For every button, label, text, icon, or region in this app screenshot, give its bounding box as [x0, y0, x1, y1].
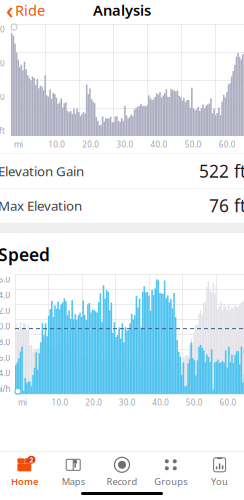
staticText: 60.0: [219, 397, 236, 408]
staticText: 76 ft: [209, 194, 244, 217]
staticText: Groups: [154, 475, 187, 488]
button[interactable]: Max Elevation: [0, 189, 244, 223]
staticText: 60: [0, 24, 5, 35]
staticText: 20: [0, 92, 5, 102]
button[interactable]: Groups: [146, 452, 195, 488]
button[interactable]: You: [195, 452, 244, 488]
staticText: mi: [14, 139, 23, 150]
staticText: 20.0: [85, 397, 102, 408]
staticText: 60.0: [219, 139, 236, 150]
staticText: 30.0: [116, 139, 133, 150]
staticText: Analysis: [93, 0, 151, 20]
staticText: Record: [106, 475, 137, 488]
staticText: 24.0: [0, 290, 10, 300]
staticText: 20.0: [0, 321, 10, 332]
staticText: Elevation Gain: [0, 162, 84, 180]
staticText: mi: [18, 397, 27, 408]
staticText: 10.0: [48, 139, 65, 150]
staticText: 14.0: [0, 368, 10, 378]
staticText: ft: [0, 125, 5, 136]
staticText: 50.0: [186, 397, 203, 408]
button[interactable]: ‹: [0, 0, 45, 25]
staticText: Max Elevation: [0, 197, 82, 214]
staticText: 20.0: [82, 139, 99, 150]
staticText: Maps: [62, 475, 85, 488]
staticText: 30.0: [119, 397, 136, 408]
staticText: 10.0: [52, 397, 69, 408]
staticText: 50.0: [185, 139, 202, 150]
staticText: You: [211, 475, 228, 488]
staticText: 40: [0, 58, 5, 68]
staticText: Home: [11, 475, 38, 488]
staticText: 2: [29, 455, 33, 464]
button[interactable]: Home: [0, 452, 49, 488]
staticText: 40.0: [152, 397, 169, 408]
staticText: Ride: [15, 0, 45, 20]
staticText: 18.0: [0, 337, 10, 347]
button[interactable]: Record: [98, 452, 146, 488]
staticText: Speed: [0, 243, 50, 266]
staticText: 22.0: [0, 305, 10, 316]
staticText: 26.0: [0, 274, 10, 285]
staticText: 16.0: [0, 352, 10, 363]
button[interactable]: Maps: [49, 452, 98, 488]
staticText: 522 ft: [199, 160, 244, 183]
button[interactable]: Elevation Gain: [0, 154, 244, 188]
staticText: ‹: [6, 0, 13, 25]
staticText: mi/h: [0, 383, 10, 394]
staticText: 40.0: [151, 139, 168, 150]
